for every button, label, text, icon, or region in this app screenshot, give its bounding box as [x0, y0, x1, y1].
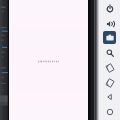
button[interactable]: Back — [103, 90, 116, 103]
button[interactable]: Power — [103, 2, 116, 15]
button[interactable]: Rotate right — [103, 76, 116, 89]
button[interactable]: Home — [103, 105, 116, 118]
button[interactable]: Project sidebar — [0, 0, 9, 120]
button[interactable]: Take screenshot — [103, 31, 116, 44]
button[interactable]: Zoom — [103, 46, 116, 59]
button[interactable]: Rotate left — [103, 61, 116, 74]
button[interactable]: Volume — [103, 17, 116, 30]
